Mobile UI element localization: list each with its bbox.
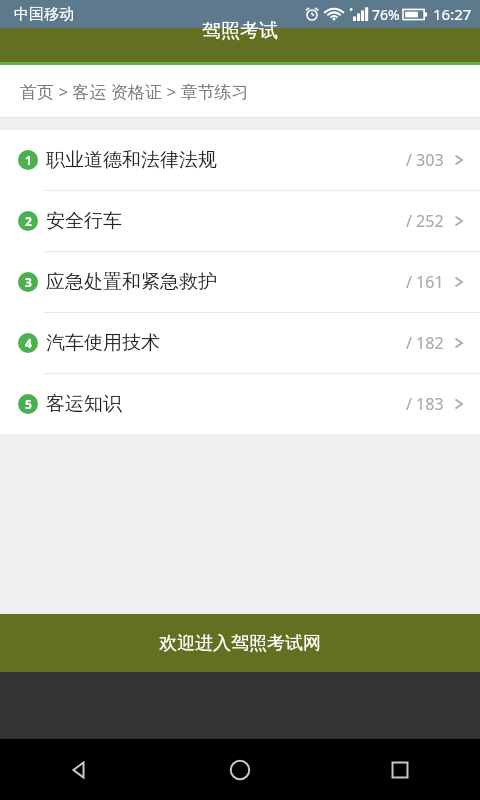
staticText: 汽车使用技术 (46, 331, 160, 355)
staticText: 4 (25, 335, 32, 351)
button[interactable]: Back (0, 739, 160, 800)
button[interactable]: 3 (0, 252, 480, 312)
staticText: / 183 (406, 393, 444, 415)
staticText: 3 (25, 274, 32, 290)
staticText: 首页 > 客运 资格证 > 章节练习 (20, 80, 249, 103)
staticText: 5 (25, 396, 32, 412)
staticText: 16:27 (433, 4, 472, 24)
button[interactable]: 1 (0, 130, 480, 190)
staticText: 中国移动 (14, 5, 74, 24)
staticText: 客运知识 (46, 392, 122, 416)
button[interactable]: 5 (0, 374, 480, 434)
staticText: 职业道德和法律法规 (46, 148, 217, 172)
button[interactable]: Home (160, 739, 320, 800)
staticText: 欢迎进入驾照考试网 (159, 632, 321, 655)
staticText: / 252 (406, 210, 444, 232)
staticText: 1 (25, 152, 32, 168)
staticText: / 182 (406, 332, 444, 354)
staticText: 2 (25, 213, 32, 229)
staticText: / 303 (406, 149, 444, 171)
staticText: 驾照考试 (202, 19, 278, 43)
staticText: 76% (372, 5, 400, 24)
staticText: / 161 (406, 271, 444, 293)
button[interactable]: 4 (0, 313, 480, 373)
button[interactable]: 首页 > 客运 资格证 > 章节练习 (0, 65, 480, 118)
staticText: 安全行车 (46, 209, 122, 233)
button[interactable]: 2 (0, 191, 480, 251)
staticText: 应急处置和紧急救护 (46, 270, 217, 294)
button[interactable]: 欢迎进入驾照考试网 (0, 614, 480, 672)
button[interactable]: Recents (320, 739, 480, 800)
